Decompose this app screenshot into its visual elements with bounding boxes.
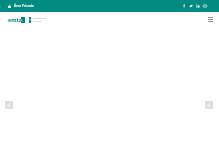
button[interactable]: LinkedIn [196,4,200,8]
button[interactable]: Twitter [189,4,193,8]
button[interactable]: Siguiente [205,101,213,109]
staticText: emta [8,16,23,23]
other: Área Privada [8,5,11,8]
button[interactable]: Anterior [5,101,13,109]
button[interactable]: YouTube [203,4,207,8]
button[interactable]: emta [8,16,23,23]
button[interactable]: Menú [204,14,216,25]
staticText: LA RIOJA [33,20,42,23]
button[interactable]: Facebook [182,4,186,8]
button[interactable]: Área Privada [8,4,34,8]
staticText: Área Privada [14,4,34,8]
staticText: GOBIERNO DE [33,17,47,20]
